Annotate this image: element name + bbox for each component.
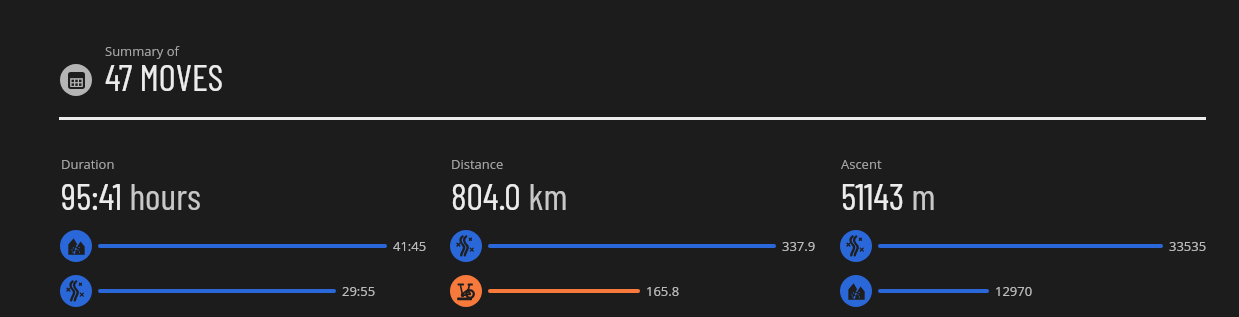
other: Calendar: [60, 64, 92, 96]
other: Cross-country skiing: [450, 230, 482, 262]
other: Cross-country skiing: [840, 230, 872, 262]
staticText: 51143: [841, 173, 904, 217]
other: Indoor cycling: [450, 275, 482, 307]
staticText: 41:45: [393, 237, 427, 255]
button[interactable]: Cross-country skiing: [450, 230, 816, 262]
button[interactable]: Downhill skiing: [60, 230, 427, 262]
other: Downhill skiing: [840, 275, 872, 307]
other: Downhill skiing: [60, 230, 92, 262]
staticText: 12970: [995, 282, 1033, 300]
staticText: Ascent: [841, 155, 882, 173]
other: Cross-country skiing: [60, 275, 92, 307]
staticText: 337.9: [782, 237, 816, 255]
staticText: Distance: [451, 155, 504, 173]
button[interactable]: Calendar: [60, 42, 224, 104]
staticText: 47 MOVES: [105, 54, 224, 98]
staticText: m: [904, 173, 936, 217]
staticText: 95:41: [61, 173, 122, 217]
staticText: Duration: [61, 155, 115, 173]
staticText: 33535: [1169, 237, 1207, 255]
staticText: Summary of: [105, 42, 180, 60]
button[interactable]: Cross-country skiing: [840, 230, 1207, 262]
staticText: hours: [122, 173, 201, 217]
staticText: 165.8: [646, 282, 680, 300]
button[interactable]: Indoor cycling: [450, 275, 680, 307]
button[interactable]: Downhill skiing: [840, 275, 1033, 307]
staticText: km: [521, 173, 568, 217]
staticText: 29:55: [342, 282, 376, 300]
staticText: 804.0: [451, 173, 521, 217]
button[interactable]: Cross-country skiing: [60, 275, 376, 307]
